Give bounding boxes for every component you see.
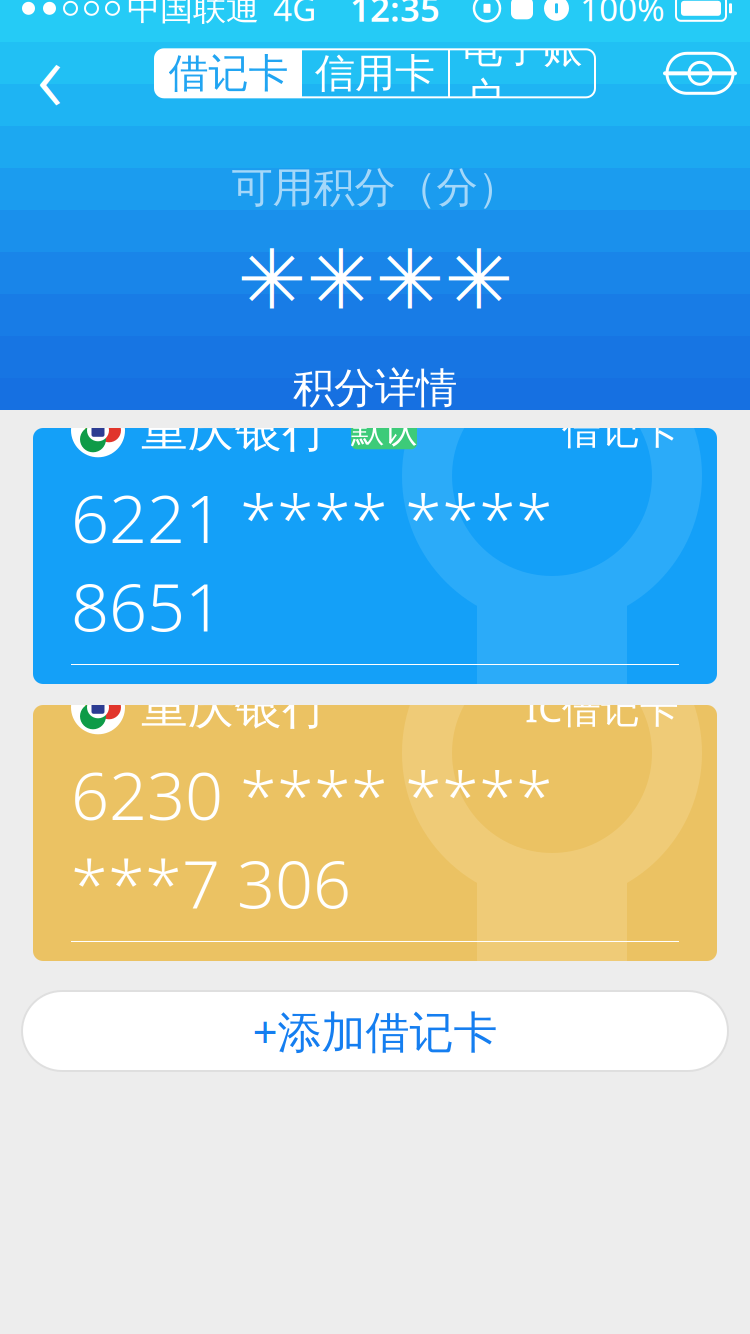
- staticText: 默认: [351, 410, 417, 451]
- button[interactable]: 信用卡: [302, 49, 448, 97]
- button[interactable]: Back: [0, 30, 100, 116]
- staticText: 12:35: [350, 0, 440, 31]
- staticText: 重庆银行: [141, 679, 329, 736]
- staticText: 积分详情: [293, 363, 457, 414]
- staticText: ‹: [36, 6, 63, 141]
- button[interactable]: 积分详情: [267, 353, 483, 424]
- button[interactable]: Hide amounts: [650, 30, 750, 116]
- staticText: 借记卡: [562, 406, 679, 454]
- staticText: 6221 **** **** 8651: [71, 473, 553, 650]
- staticText: 中国联通: [127, 0, 259, 29]
- staticText: ****: [308, 964, 392, 1015]
- staticText: 可用余额(元): [71, 964, 290, 1015]
- staticText: 重庆银行: [141, 402, 329, 459]
- button[interactable]: 重庆银行: [33, 705, 717, 961]
- staticText: 借记卡: [168, 49, 288, 98]
- staticText: ****: [308, 687, 392, 738]
- staticText: 可用余额(元): [71, 687, 290, 738]
- staticText: 可用积分（分）: [231, 162, 518, 213]
- button[interactable]: 电子账户: [450, 49, 595, 97]
- staticText: 100%: [580, 0, 665, 30]
- staticText: 电子账户: [462, 24, 582, 122]
- button[interactable]: 重庆银行: [33, 428, 717, 684]
- button[interactable]: +添加借记卡: [22, 991, 728, 1071]
- button[interactable]: 借记卡: [155, 49, 302, 97]
- staticText: IC借记卡: [525, 681, 679, 733]
- staticText: 信用卡: [315, 49, 435, 98]
- staticText: 6230 **** **** ***7 306: [71, 750, 553, 927]
- staticText: ✳✳✳✳: [237, 233, 513, 327]
- staticText: 4G: [273, 0, 316, 30]
- staticText: +添加借记卡: [252, 1002, 497, 1060]
